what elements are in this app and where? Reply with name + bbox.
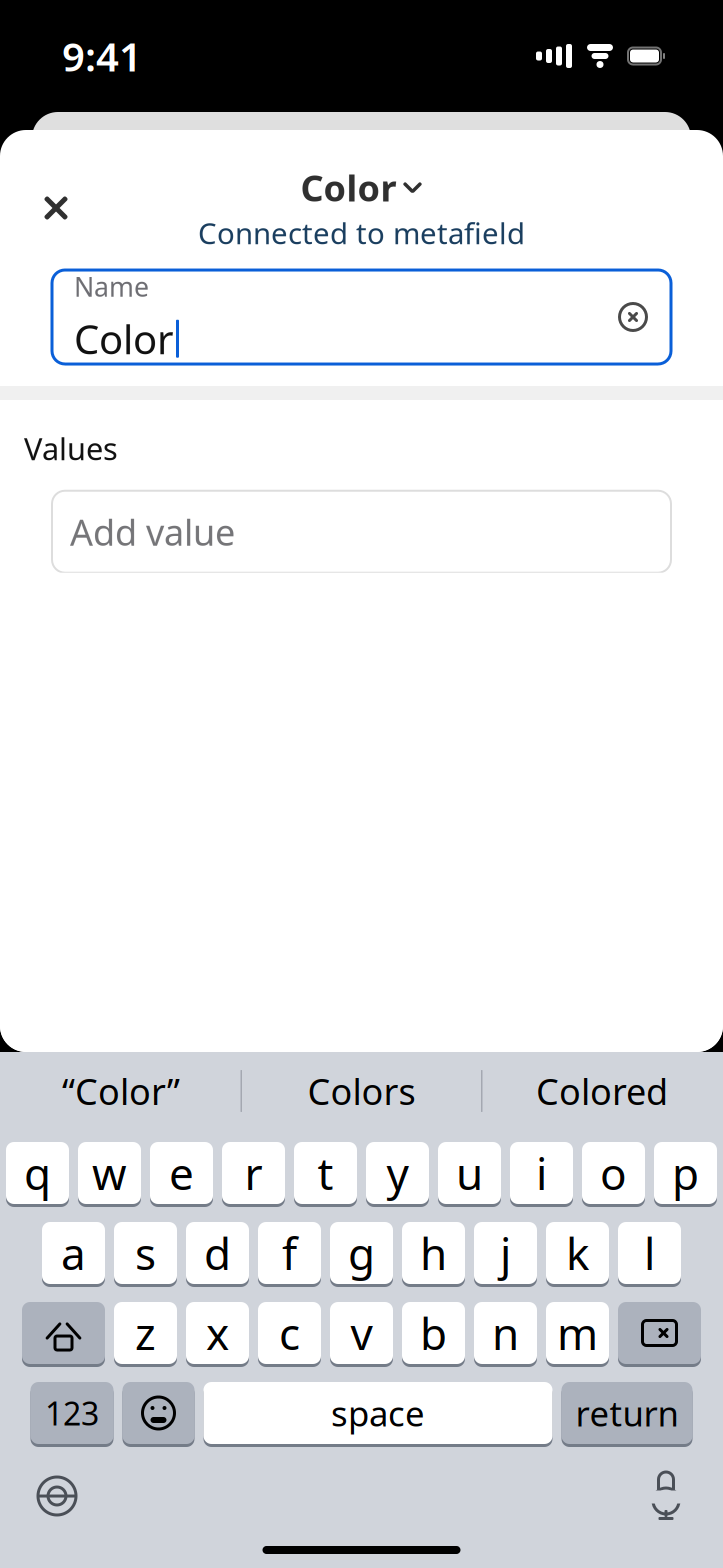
staticText: z bbox=[135, 1304, 156, 1362]
button[interactable]: Add value bbox=[52, 491, 671, 573]
staticText: q bbox=[24, 1144, 51, 1202]
staticText: 123 bbox=[45, 1392, 99, 1434]
button[interactable]: Next keyboard bbox=[26, 1465, 88, 1527]
staticText: a bbox=[61, 1224, 86, 1282]
button[interactable]: Key bbox=[22, 1302, 105, 1367]
button[interactable]: Colored bbox=[482, 1052, 721, 1130]
button[interactable]: f bbox=[258, 1222, 321, 1287]
button[interactable]: i bbox=[510, 1142, 573, 1207]
staticText: n bbox=[492, 1304, 519, 1362]
staticText: j bbox=[500, 1224, 511, 1282]
staticText: v bbox=[350, 1304, 372, 1362]
staticText: i bbox=[536, 1144, 547, 1202]
staticText: 9:41 bbox=[62, 29, 142, 82]
button[interactable]: Key bbox=[30, 1382, 113, 1447]
button[interactable]: h bbox=[402, 1222, 465, 1287]
button[interactable]: c bbox=[258, 1302, 321, 1367]
staticText: e bbox=[169, 1144, 194, 1202]
button[interactable]: Name bbox=[52, 270, 671, 364]
staticText: s bbox=[135, 1224, 156, 1282]
button[interactable]: b bbox=[402, 1302, 465, 1367]
button[interactable]: j bbox=[474, 1222, 537, 1287]
staticText: space bbox=[331, 1390, 425, 1436]
button[interactable]: Colors bbox=[242, 1052, 481, 1130]
staticText: f bbox=[282, 1224, 297, 1282]
staticText: k bbox=[566, 1224, 589, 1282]
staticText: Color bbox=[74, 312, 174, 365]
staticText: d bbox=[204, 1224, 231, 1282]
staticText: h bbox=[420, 1224, 447, 1282]
staticText: Colored bbox=[536, 1067, 668, 1115]
staticText: p bbox=[672, 1144, 699, 1202]
button[interactable]: y bbox=[366, 1142, 429, 1207]
button[interactable]: d bbox=[186, 1222, 249, 1287]
staticText: “Color” bbox=[62, 1067, 180, 1115]
button[interactable]: r bbox=[222, 1142, 285, 1207]
button[interactable]: t bbox=[294, 1142, 357, 1207]
button[interactable]: k bbox=[546, 1222, 609, 1287]
staticText: Color bbox=[300, 164, 396, 211]
button[interactable]: z bbox=[114, 1302, 177, 1367]
staticText: Connected to metafield bbox=[198, 213, 525, 252]
staticText: x bbox=[206, 1304, 229, 1362]
staticText: Values bbox=[24, 428, 118, 469]
staticText: g bbox=[348, 1224, 375, 1282]
button[interactable]: “Color” bbox=[1, 1052, 240, 1130]
staticText: o bbox=[600, 1144, 627, 1202]
staticText: Colors bbox=[307, 1067, 415, 1115]
staticText: b bbox=[420, 1304, 447, 1362]
button[interactable]: m bbox=[546, 1302, 609, 1367]
button[interactable]: u bbox=[438, 1142, 501, 1207]
staticText: w bbox=[92, 1144, 127, 1202]
button[interactable]: Key bbox=[122, 1382, 194, 1447]
button[interactable]: n bbox=[474, 1302, 537, 1367]
button[interactable]: Dictate bbox=[635, 1465, 697, 1527]
staticText: Name bbox=[74, 269, 149, 304]
button[interactable]: s bbox=[114, 1222, 177, 1287]
button[interactable]: p bbox=[654, 1142, 717, 1207]
staticText: l bbox=[644, 1224, 655, 1282]
button[interactable]: e bbox=[150, 1142, 213, 1207]
button[interactable]: x bbox=[186, 1302, 249, 1367]
button[interactable]: g bbox=[330, 1222, 393, 1287]
staticText: u bbox=[456, 1144, 483, 1202]
button[interactable]: w bbox=[78, 1142, 141, 1207]
button[interactable]: o bbox=[582, 1142, 645, 1207]
button[interactable]: l bbox=[618, 1222, 681, 1287]
staticText: y bbox=[386, 1144, 408, 1202]
staticText: t bbox=[317, 1144, 333, 1202]
button[interactable]: Key bbox=[618, 1302, 701, 1367]
staticText: m bbox=[557, 1304, 598, 1362]
button[interactable]: v bbox=[330, 1302, 393, 1367]
staticText: r bbox=[244, 1144, 262, 1202]
button[interactable]: Close bbox=[22, 174, 90, 242]
button[interactable]: a bbox=[42, 1222, 105, 1287]
button[interactable]: Key bbox=[561, 1382, 692, 1447]
button[interactable]: q bbox=[6, 1142, 69, 1207]
staticText: c bbox=[279, 1304, 300, 1362]
staticText: return bbox=[575, 1390, 678, 1436]
button[interactable]: space bbox=[203, 1382, 552, 1447]
staticText: Add value bbox=[70, 508, 235, 556]
